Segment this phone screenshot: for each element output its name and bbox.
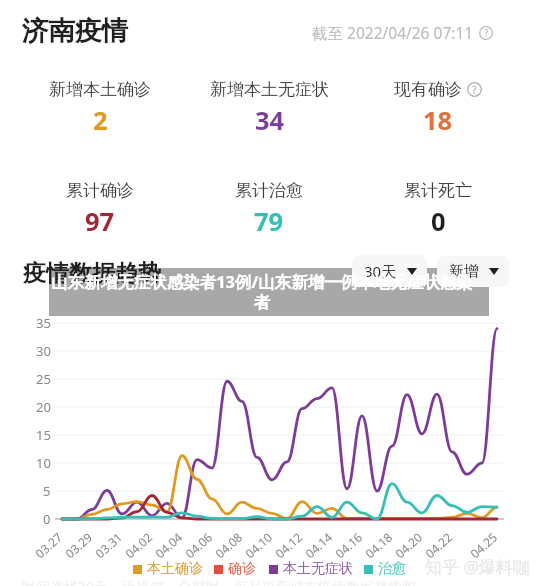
- staticText: 04.12: [272, 529, 305, 561]
- staticText: 累计死亡: [404, 180, 472, 201]
- staticText: 10: [36, 454, 51, 472]
- staticText: 04.08: [212, 529, 245, 561]
- button[interactable]: 确诊: [214, 560, 256, 578]
- staticText: 04.16: [332, 529, 365, 561]
- staticText: 5: [43, 482, 51, 500]
- staticText: 18: [423, 103, 453, 138]
- button[interactable]: 新增本土确诊: [10, 79, 190, 138]
- staticText: 累计确诊: [66, 180, 134, 201]
- staticText: 截至 2022/04/26 07:11: [312, 22, 474, 43]
- staticText: ?: [472, 83, 477, 97]
- staticText: 04.25: [467, 529, 500, 561]
- staticText: 04.18: [362, 529, 395, 561]
- staticText: 2: [93, 103, 108, 138]
- staticText: 15: [36, 426, 51, 444]
- staticText: 04.10: [242, 529, 275, 561]
- staticText: 新增: [449, 262, 479, 281]
- button[interactable]: 累计死亡: [348, 180, 528, 239]
- staticText: 治愈: [378, 560, 406, 578]
- staticText: 0: [43, 510, 51, 528]
- button[interactable]: 本土无症状: [269, 560, 353, 578]
- staticText: 疫情数据趋势: [23, 259, 161, 288]
- staticText: 确诊: [228, 560, 256, 578]
- staticText: 04.06: [182, 529, 215, 561]
- staticText: 新增本土无症状: [210, 79, 329, 100]
- staticText: 20: [36, 398, 51, 416]
- staticText: 04.04: [152, 529, 185, 561]
- staticText: 本土无症状: [283, 560, 353, 578]
- button[interactable]: [49, 268, 489, 316]
- staticText: 累计治愈: [235, 180, 303, 201]
- button[interactable]: 新增本土无症状: [179, 79, 359, 138]
- staticText: 济南疫情: [22, 14, 128, 47]
- staticText: 03.29: [62, 529, 95, 561]
- staticText: 79: [254, 204, 284, 239]
- staticText: 34: [255, 103, 285, 138]
- staticText: 97: [85, 204, 115, 239]
- staticText: 知乎 @爆料咖: [425, 555, 530, 578]
- staticText: 本土确诊: [147, 560, 203, 578]
- button[interactable]: 30天: [352, 255, 427, 287]
- staticText: 新增本土确诊: [49, 79, 151, 100]
- staticText: 03.31: [92, 529, 125, 561]
- staticText: 时间选择30天、近半年、全部时、每月更新城市疫情数据趋势图: [22, 577, 417, 586]
- staticText: ?: [484, 26, 489, 40]
- button[interactable]: 累计确诊: [10, 180, 190, 239]
- staticText: 04.02: [122, 529, 155, 561]
- button[interactable]: 现有确诊: [348, 79, 528, 138]
- staticText: 03.27: [32, 529, 65, 561]
- button[interactable]: Data source info: [312, 22, 493, 43]
- staticText: 25: [36, 370, 51, 388]
- button[interactable]: 新增: [437, 256, 509, 287]
- staticText: 04.20: [392, 529, 425, 561]
- staticText: 35: [36, 314, 51, 332]
- button[interactable]: 累计治愈: [179, 180, 359, 239]
- staticText: 30: [36, 342, 51, 360]
- staticText: 山东新增无症状感染者13例/山东新增一例本地无症状感染者: [45, 270, 479, 313]
- staticText: 04.22: [422, 529, 455, 561]
- staticText: 现有确诊: [394, 79, 462, 100]
- staticText: 04.14: [302, 529, 335, 561]
- staticText: 0: [431, 204, 446, 239]
- staticText: 30天: [364, 261, 397, 281]
- button[interactable]: 治愈: [364, 560, 406, 578]
- button[interactable]: 本土确诊: [133, 560, 203, 578]
